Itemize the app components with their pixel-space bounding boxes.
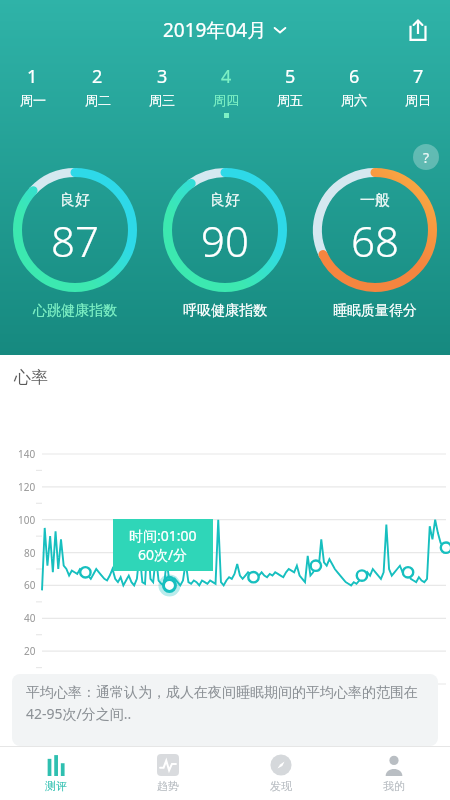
staticText: 时间:01:00 [129,526,197,545]
button[interactable]: 我的 [337,747,450,800]
staticText: 60 [24,578,36,592]
staticText: 120 [18,480,36,494]
button[interactable]: 良好 [150,166,300,320]
button[interactable]: 4 [194,62,258,120]
button[interactable]: 2019年04月 [157,13,293,47]
staticText: 01:00 [129,692,155,706]
button[interactable]: 2 [65,62,130,120]
staticText: 良好 [210,191,240,210]
staticText: 周四 [213,92,239,108]
staticText: 1 [27,64,38,89]
button[interactable]: 平均心率：通常认为，成人在夜间睡眠期间的平均心率的范围在42-95次/分之间.. [12,674,438,746]
staticText: 一般 [360,191,390,210]
staticText: 呼吸健康指数 [183,302,267,320]
staticText: 2 [92,64,103,89]
staticText: 100 [18,513,36,527]
staticText: 20 [24,644,36,658]
staticText: 周三 [149,92,175,108]
staticText: 良好 [60,191,90,210]
staticText: 平均心率：通常认为，成人在夜间睡眠期间的平均心率的范围在42-95次/分之间.. [26,684,424,724]
button[interactable]: 5 [258,62,322,120]
staticText: 07:00 [412,690,438,704]
staticText: 4 [221,64,232,89]
staticText: 6 [349,64,360,89]
staticText: 23:00 [33,690,59,704]
staticText: 周二 [85,92,111,108]
staticText: 5 [285,64,296,89]
staticText: 87 [51,212,99,269]
staticText: 02:00 [177,690,203,704]
staticText: ? [423,148,430,167]
button[interactable]: Help [413,144,439,170]
staticText: 周一 [20,92,46,108]
button[interactable]: 6 [322,62,386,120]
button[interactable]: 3 [130,62,194,120]
staticText: 90 [201,212,249,269]
staticText: 140 [18,447,36,461]
staticText: 心率 [14,367,48,388]
staticText: 60次/分 [138,545,188,564]
staticText: 03:00 [224,690,250,704]
button[interactable]: 一般 [300,166,450,320]
staticText: 周五 [277,92,303,108]
staticText: 3 [157,64,168,89]
staticText: 06:00 [365,690,391,704]
staticText: 68 [351,212,399,269]
button[interactable]: 1 [0,62,65,120]
staticText: 04:00 [271,690,297,704]
staticText: 周日 [405,92,431,108]
staticText: 00:00 [81,690,107,704]
button[interactable]: 7 [386,62,450,120]
button[interactable]: 发现 [224,747,337,800]
staticText: 心跳健康指数 [33,302,117,320]
staticText: 40 [24,611,36,625]
staticText: 测评 [45,779,67,793]
staticText: 80 [24,546,36,560]
button[interactable]: 趋势 [112,747,224,800]
staticText: 睡眠质量得分 [333,302,417,320]
staticText: 趋势 [157,779,179,793]
button[interactable]: 测评 [0,747,112,800]
staticText: 05:00 [318,690,344,704]
button[interactable]: Share [398,10,438,50]
staticText: 7 [413,64,424,89]
staticText: 0 [30,677,36,691]
staticText: 发现 [270,779,292,793]
staticText: 周六 [341,92,367,108]
staticText: 2019年04月 [163,17,267,43]
button[interactable]: 良好 [0,166,150,320]
staticText: 我的 [383,779,405,793]
